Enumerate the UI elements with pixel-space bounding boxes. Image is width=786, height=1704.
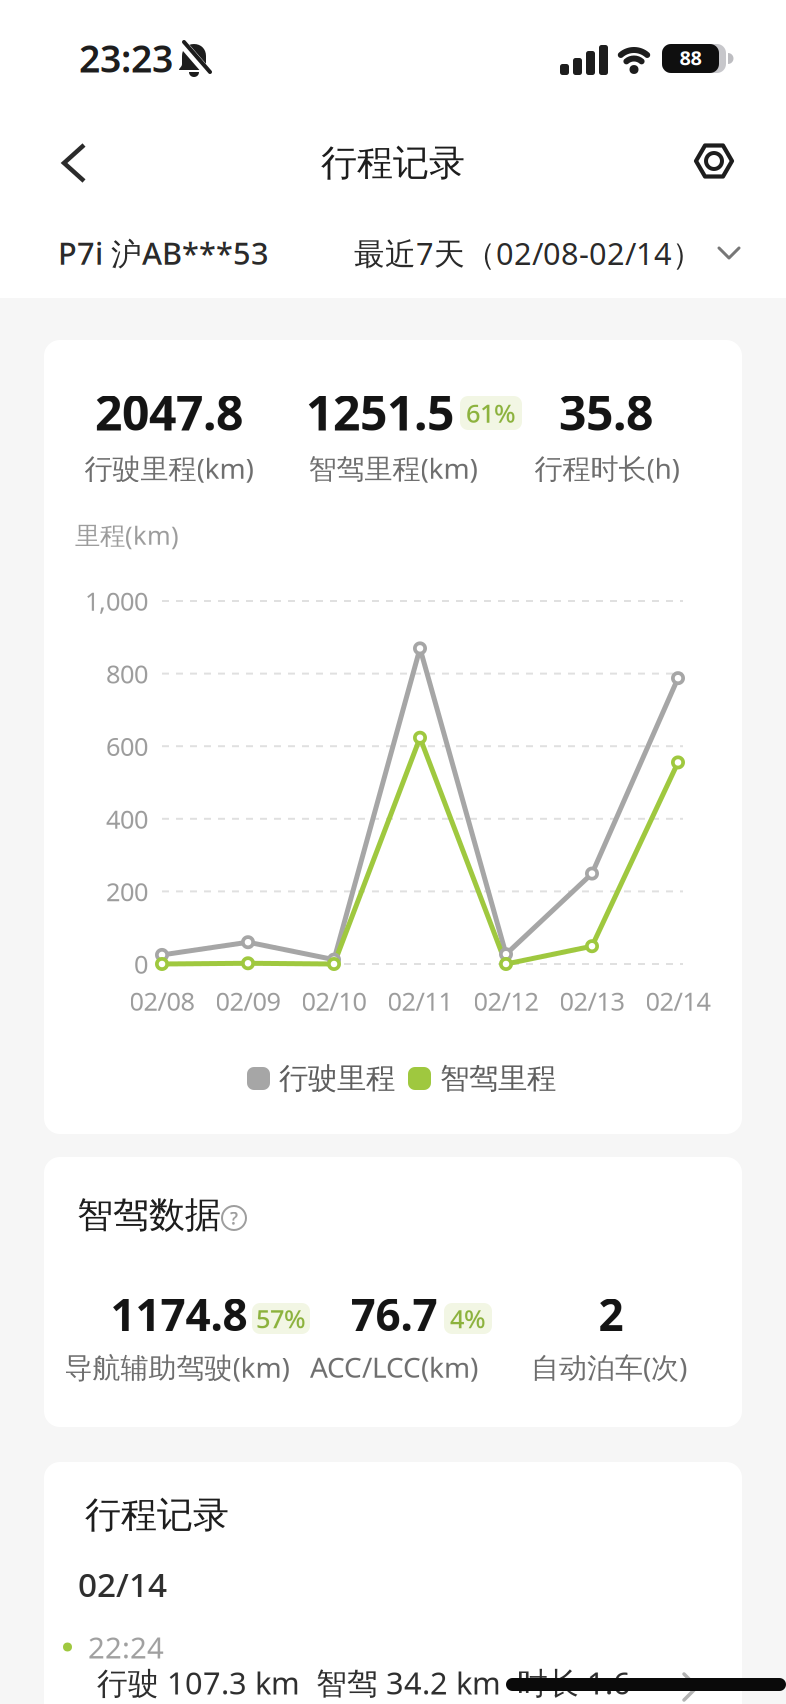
staticText: 600 [106, 729, 148, 763]
button[interactable]: Settings [684, 132, 744, 190]
staticText: 导航辅助驾驶(km) [64, 1348, 289, 1386]
staticText: 35.8 [559, 380, 653, 444]
staticText: 智驾里程(km) [308, 449, 477, 487]
button[interactable]: 智驾数据说明 [220, 1204, 248, 1232]
staticText: 自动泊车(次) [531, 1348, 687, 1386]
staticText: 1,000 [85, 584, 148, 618]
staticText: 智驾里程 [440, 1060, 556, 1096]
staticText: ACC/LCC(km) [310, 1348, 478, 1386]
staticText: 88 [679, 44, 701, 71]
staticText: 02/08 [129, 984, 194, 1018]
staticText: 1174.8 [110, 1285, 247, 1343]
staticText: 行驶里程 [279, 1060, 395, 1096]
staticText: 里程(km) [75, 518, 179, 552]
button[interactable]: 行驶 107.3 km 智驾 34.2 km 时长 1.6 h [44, 1462, 742, 1704]
staticText: ? [230, 1206, 238, 1229]
staticText: 2047.8 [95, 380, 243, 444]
staticText: 1251.5 [306, 380, 454, 444]
staticText: 800 [106, 657, 148, 690]
button[interactable]: 选择时间范围 [354, 233, 741, 273]
staticText: 02/13 [559, 984, 624, 1018]
staticText: 23:23 [79, 33, 173, 83]
button[interactable]: P7i 沪AB***53 [58, 233, 269, 273]
staticText: 02/14 [78, 1562, 167, 1606]
staticText: 行驶里程(km) [84, 449, 253, 487]
staticText: 02/12 [473, 984, 538, 1018]
staticText: 行驶 107.3 km 智驾 34.2 km 时长 1.6 h [97, 1662, 631, 1704]
staticText: 行程时长(h) [534, 449, 679, 487]
staticText: 02/11 [387, 984, 452, 1018]
staticText: 400 [106, 802, 148, 836]
staticText: 4% [450, 1302, 486, 1335]
staticText: 0 [134, 947, 148, 981]
staticText: 57% [256, 1302, 306, 1335]
staticText: 22:24 [88, 1627, 164, 1666]
staticText: 行程记录 [85, 1493, 229, 1537]
staticText: 智驾数据 [77, 1193, 221, 1237]
staticText: P7i 沪AB***53 [58, 233, 269, 273]
staticText: 最近7天（02/08-02/14） [354, 233, 703, 273]
staticText: 61% [466, 396, 516, 430]
staticText: 2 [598, 1285, 623, 1343]
staticText: 76.7 [350, 1285, 437, 1343]
staticText: 行程记录 [321, 141, 465, 185]
staticText: 200 [106, 875, 148, 908]
staticText: 02/09 [215, 984, 280, 1018]
button[interactable]: Back [47, 129, 101, 197]
staticText: 02/14 [645, 984, 710, 1018]
staticText: 02/10 [301, 984, 366, 1018]
